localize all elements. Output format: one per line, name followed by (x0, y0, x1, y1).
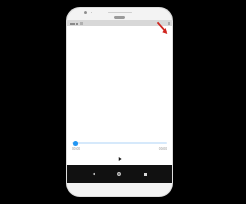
button[interactable]: Play (116, 155, 124, 163)
staticText: 00:00 (158, 147, 167, 151)
staticText: 00:00 (72, 147, 81, 151)
button[interactable]: Home (106, 165, 132, 183)
button[interactable]: Back (81, 165, 106, 183)
button[interactable]: Recent apps (132, 165, 158, 183)
button[interactable] (72, 139, 167, 147)
